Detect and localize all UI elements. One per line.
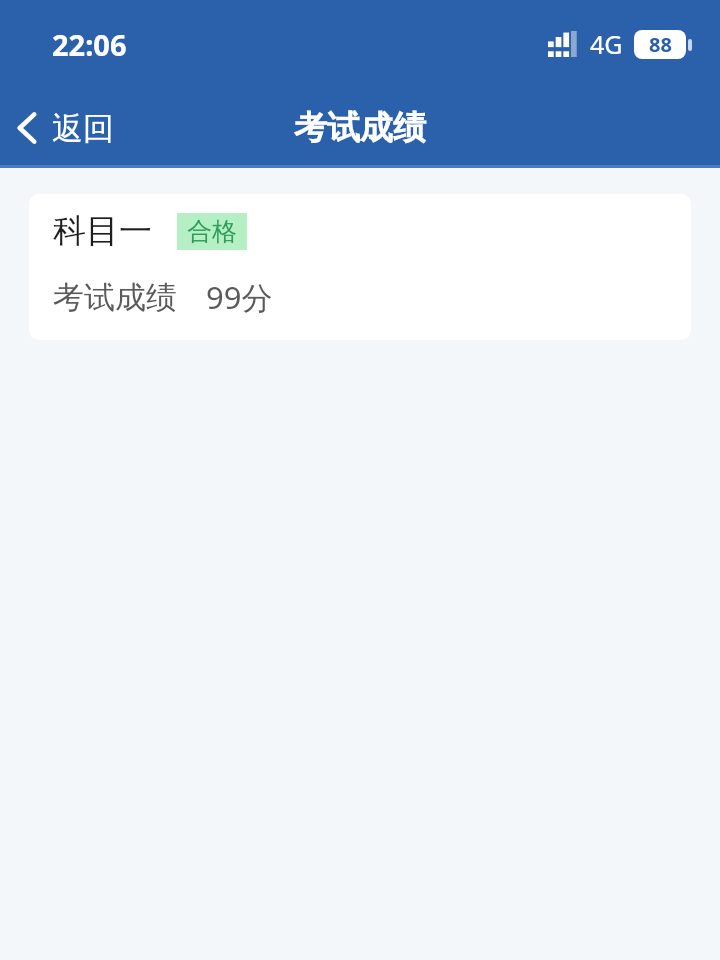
staticText: 返回	[52, 109, 114, 148]
staticText: 22:06	[52, 25, 127, 64]
staticText: 考试成绩	[0, 107, 720, 149]
staticText: 科目一	[53, 210, 152, 252]
staticText: 考试成绩	[53, 278, 177, 317]
staticText: 4G	[590, 27, 623, 61]
button[interactable]: 科目一	[29, 194, 691, 340]
button[interactable]: 返回	[0, 88, 130, 168]
staticText: 88	[649, 31, 672, 58]
staticText: 合格	[187, 216, 237, 247]
staticText: 99分	[206, 276, 273, 318]
